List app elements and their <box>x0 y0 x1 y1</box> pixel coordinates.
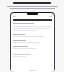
button[interactable] <box>13 40 52 43</box>
button[interactable] <box>13 46 52 49</box>
button[interactable]: Title bar <box>13 19 52 21</box>
button[interactable] <box>13 2 51 4</box>
button[interactable] <box>13 34 52 37</box>
